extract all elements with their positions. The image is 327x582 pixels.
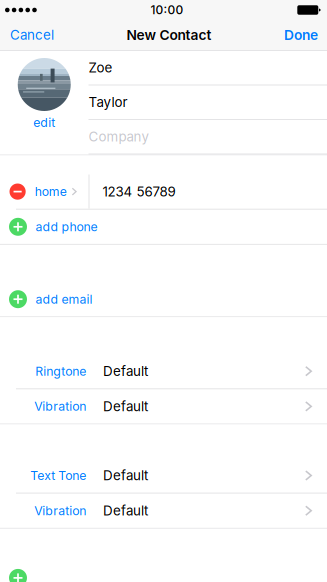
staticText: New Contact [126,27,211,43]
button[interactable]: add phone [0,210,327,244]
staticText: Vibration [34,399,86,414]
staticText: home [35,184,67,199]
staticText: Company [88,129,148,145]
staticText: Ringtone [35,364,86,379]
button[interactable]: Vibration [0,494,327,528]
button[interactable]: Done [276,20,327,50]
staticText: Default [103,363,148,379]
button[interactable]: add email [0,282,327,316]
staticText: Default [103,398,148,414]
staticText: Zoe [88,60,112,76]
staticText: add phone [35,219,97,234]
staticText: Vibration [34,503,86,518]
staticText: 10:00 [151,3,184,17]
staticText: Cancel [10,27,54,43]
staticText: 1234 56789 [102,183,175,200]
button[interactable]: Ringtone [0,354,327,388]
button[interactable]: Cancel [0,20,62,50]
staticText: Default [103,503,148,519]
staticText: Text Tone [30,468,86,483]
button[interactable]: edit [23,111,65,134]
button[interactable]: Text Tone [0,458,327,493]
staticText: Taylor [88,94,127,110]
button[interactable]: Vibration [0,389,327,423]
staticText: Done [284,27,318,43]
staticText: Default [103,467,148,483]
staticText: add email [35,292,92,307]
button[interactable]: home [0,174,88,209]
staticText: edit [33,115,55,130]
